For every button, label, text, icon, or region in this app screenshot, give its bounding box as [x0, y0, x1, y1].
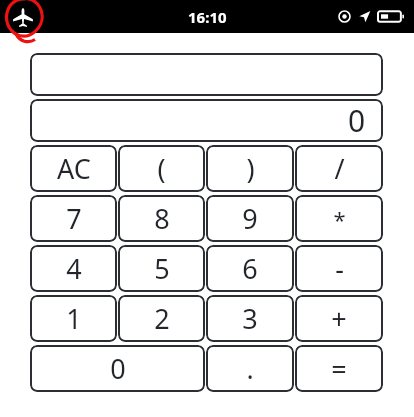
button[interactable]: 3: [206, 295, 294, 342]
button[interactable]: [30, 53, 383, 96]
button[interactable]: *: [295, 195, 383, 242]
button[interactable]: 0: [30, 345, 205, 392]
button[interactable]: /: [295, 145, 383, 192]
staticText: AC: [57, 150, 91, 187]
staticText: =: [331, 350, 347, 387]
button[interactable]: 0: [30, 99, 383, 142]
staticText: 16:10: [188, 7, 227, 27]
button[interactable]: ): [206, 145, 294, 192]
staticText: 0: [110, 350, 126, 387]
staticText: /: [334, 150, 345, 187]
button[interactable]: 8: [118, 195, 205, 242]
other: Airplane mode: [12, 6, 34, 28]
button[interactable]: 7: [30, 195, 117, 242]
button[interactable]: (: [118, 145, 205, 192]
button[interactable]: -: [295, 245, 383, 292]
button[interactable]: 4: [30, 245, 117, 292]
staticText: (: [157, 150, 166, 187]
staticText: .: [246, 350, 254, 387]
staticText: 8: [154, 200, 170, 237]
staticText: 7: [66, 200, 82, 237]
staticText: 0: [348, 100, 366, 141]
staticText: 6: [242, 250, 258, 287]
staticText: +: [331, 300, 347, 337]
staticText: 4: [66, 250, 82, 287]
staticText: ): [246, 150, 255, 187]
button[interactable]: 6: [206, 245, 294, 292]
staticText: 1: [66, 300, 82, 337]
staticText: -: [335, 250, 344, 287]
button[interactable]: 9: [206, 195, 294, 242]
button[interactable]: AC: [30, 145, 117, 192]
button[interactable]: =: [295, 345, 383, 392]
staticText: 2: [154, 300, 170, 337]
button[interactable]: .: [206, 345, 294, 392]
button[interactable]: 5: [118, 245, 205, 292]
staticText: 5: [154, 250, 170, 287]
button[interactable]: 2: [118, 295, 205, 342]
staticText: 3: [242, 300, 258, 337]
button[interactable]: 1: [30, 295, 117, 342]
staticText: 9: [242, 200, 258, 237]
button[interactable]: +: [295, 295, 383, 342]
staticText: *: [333, 204, 346, 234]
